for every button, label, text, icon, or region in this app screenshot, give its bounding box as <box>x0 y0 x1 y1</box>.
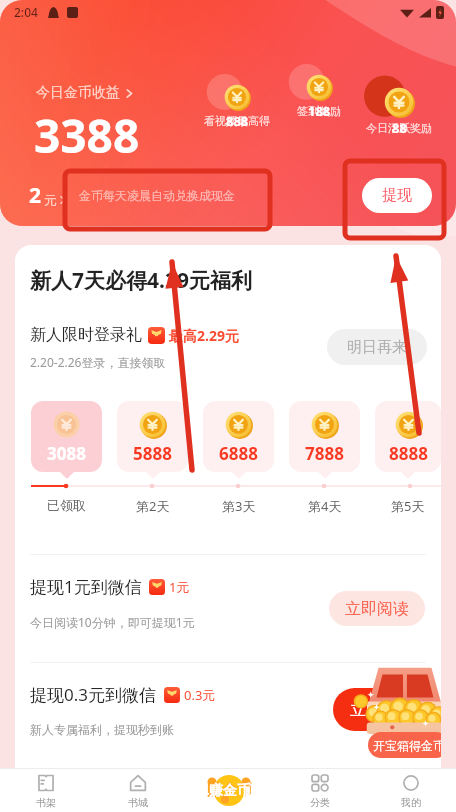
staticText: 书城 <box>128 796 148 809</box>
button[interactable]: 提现0.3元到微信 <box>15 663 441 769</box>
staticText: 188 <box>308 102 331 120</box>
staticText: 6888 <box>219 442 258 465</box>
staticText: 2.20-2.26登录，直接领取 <box>30 354 166 370</box>
staticText: 开宝箱得金币 <box>373 738 441 753</box>
staticText: 已领取 <box>47 497 86 513</box>
staticText: 1元 <box>169 578 190 596</box>
staticText: 今日阅读10分钟，即可提现1元 <box>30 614 195 630</box>
button[interactable]: 我的 <box>365 769 456 812</box>
staticText: 最高2.29元 <box>169 326 239 345</box>
staticText: 2 <box>29 181 42 210</box>
staticText: 7888 <box>305 442 344 465</box>
staticText: 5888 <box>133 442 172 465</box>
staticText: 今日活跃奖励 <box>366 121 432 135</box>
staticText: 我的 <box>401 796 421 809</box>
button[interactable]: 5888 <box>117 401 188 479</box>
button[interactable]: 书城 <box>92 769 183 812</box>
button[interactable]: 书架 <box>0 769 92 812</box>
button[interactable]: 明日再来 <box>327 329 427 365</box>
staticText: 明日再来 <box>347 338 407 357</box>
staticText: 新人7天必得4.29元福利 <box>30 266 252 295</box>
button[interactable]: 立即提现 <box>333 688 431 731</box>
staticText: 第3天 <box>222 497 256 515</box>
staticText: 新人专属福利，提现秒到账 <box>30 722 174 737</box>
staticText: 提现0.3元到微信 <box>30 683 157 706</box>
staticText: 2:04 <box>14 4 38 20</box>
staticText: 第4天 <box>308 497 342 515</box>
button[interactable]: 2 <box>29 181 67 210</box>
staticText: 立即提现 <box>350 700 414 720</box>
staticText: 分类 <box>310 796 330 809</box>
button[interactable]: 看视频最高得 <box>191 73 283 129</box>
staticText: 今日金币收益 <box>36 84 120 102</box>
staticText: 8888 <box>389 442 428 465</box>
button[interactable]: 7888 <box>289 401 360 479</box>
staticText: 0.3元 <box>184 686 216 704</box>
staticText: 第2天 <box>136 497 170 515</box>
staticText: 提现 <box>382 186 412 205</box>
staticText: 88 <box>392 119 407 137</box>
button[interactable]: 6888 <box>203 401 274 479</box>
staticText: 元 <box>44 192 57 208</box>
button[interactable]: 立即阅读 <box>329 591 425 626</box>
button[interactable]: 签到奖励 <box>273 63 365 119</box>
staticText: 888 <box>226 112 249 130</box>
button[interactable]: 开宝箱得金币 <box>368 732 441 758</box>
staticText: 赚金币 <box>207 781 252 800</box>
staticText: 3388 <box>34 104 140 167</box>
button[interactable]: 3088 <box>31 401 102 479</box>
staticText: 立即阅读 <box>345 599 409 619</box>
staticText: 赚金币 <box>209 782 251 800</box>
button[interactable]: 分类 <box>274 769 365 812</box>
staticText: 提现1元到微信 <box>30 575 142 598</box>
button[interactable]: 8888 <box>375 401 441 479</box>
staticText: 金币每天凌晨自动兑换成现金 <box>79 188 235 203</box>
staticText: 签到奖励 <box>297 104 341 118</box>
button[interactable]: 提现1元到微信 <box>15 555 441 662</box>
staticText: 书架 <box>36 796 56 809</box>
button[interactable]: 赚金币 <box>206 769 252 812</box>
staticText: 看视频最高得 <box>204 114 270 128</box>
staticText: 第5天 <box>391 497 425 515</box>
staticText: 3088 <box>47 442 86 465</box>
staticText: 新人限时登录礼 <box>30 325 142 345</box>
button[interactable]: 今日金币收益 <box>36 84 134 102</box>
button[interactable]: 提现 <box>362 178 432 213</box>
button[interactable]: 今日活跃奖励 <box>353 78 445 134</box>
